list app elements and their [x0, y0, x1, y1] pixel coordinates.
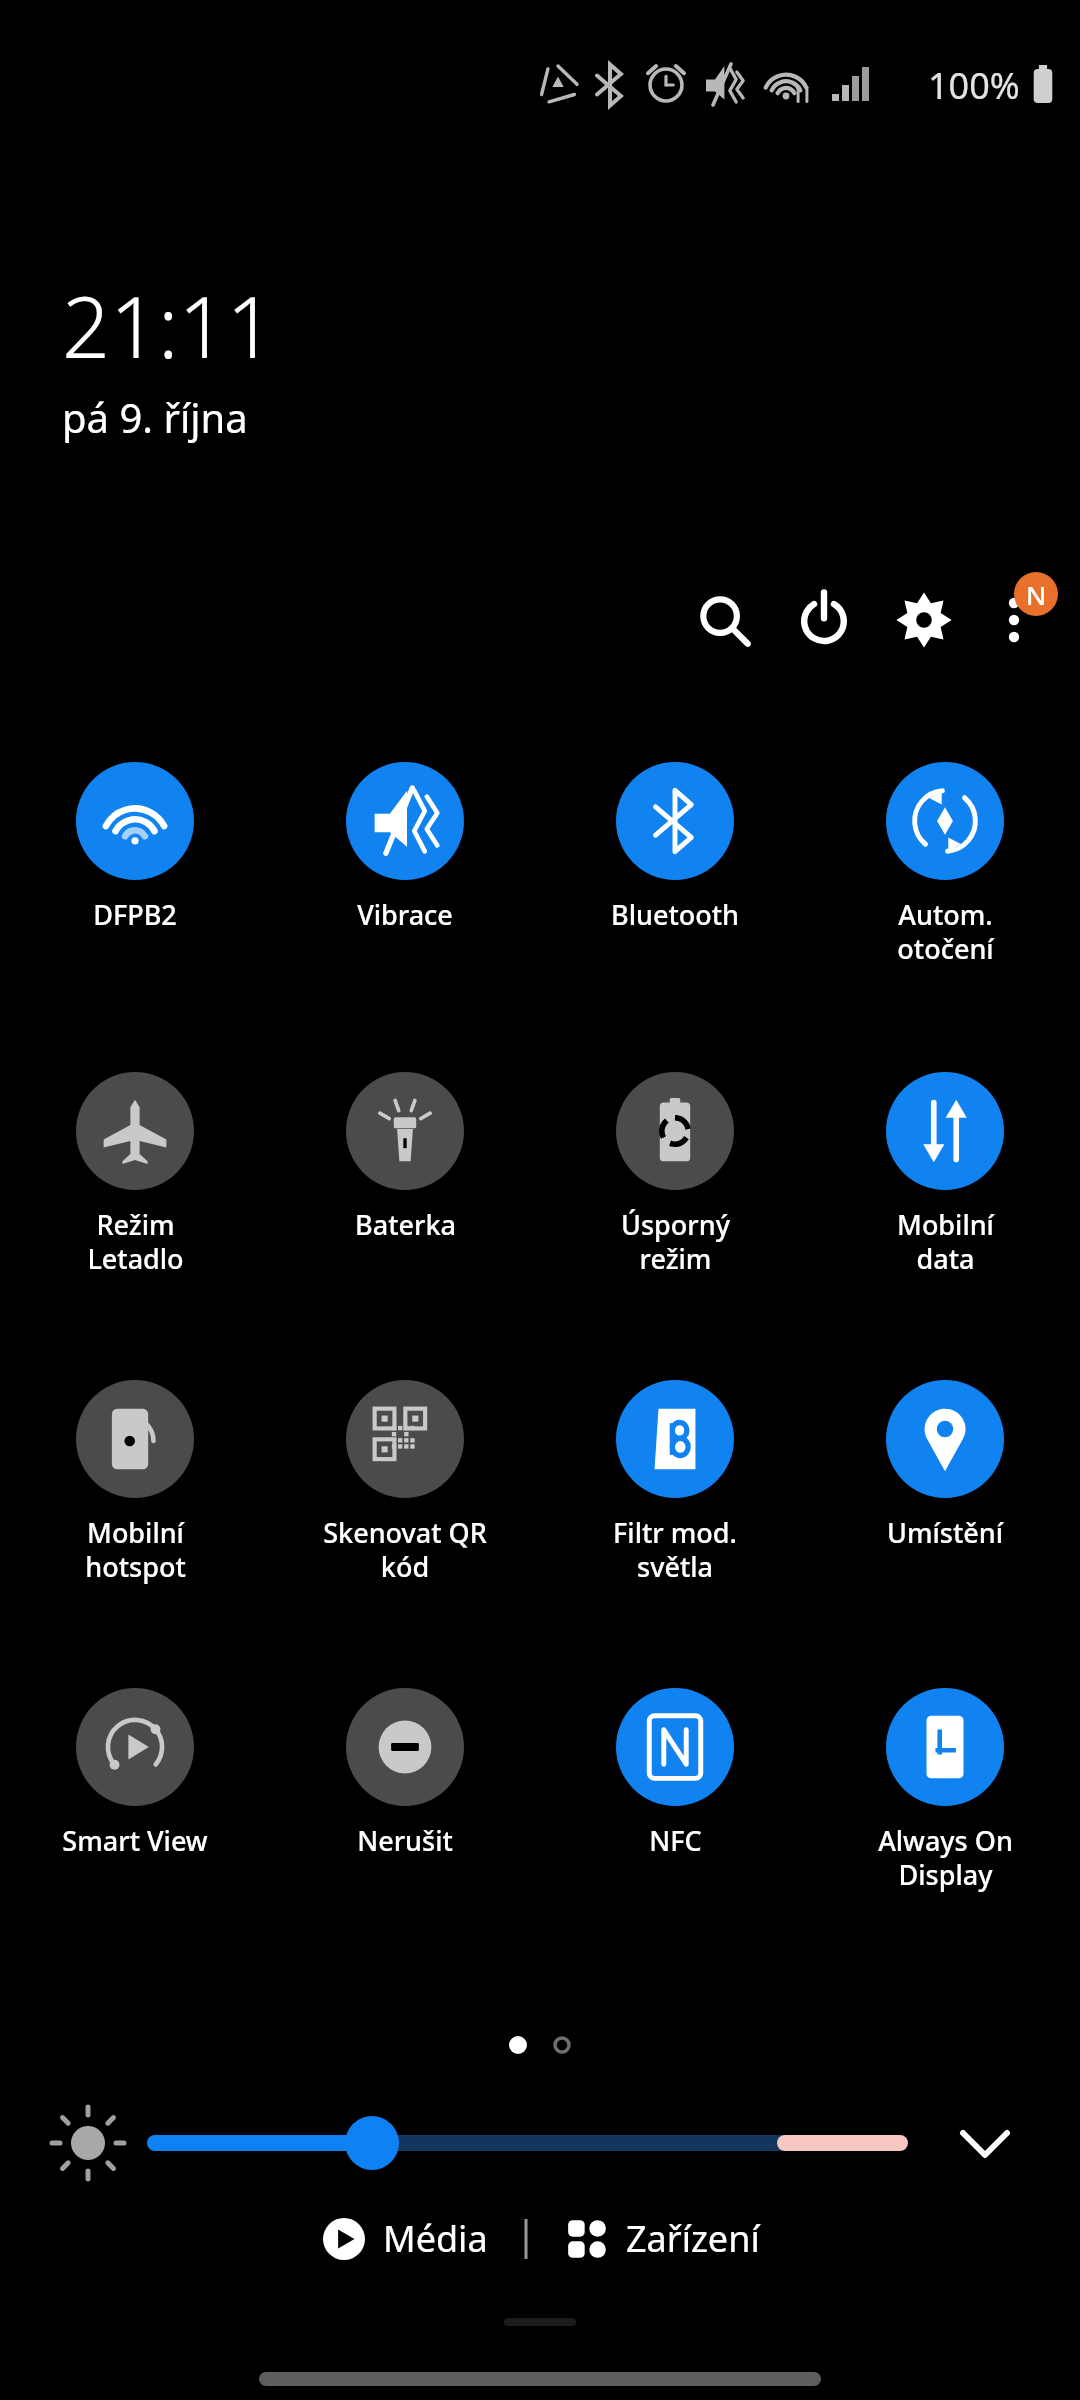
staticText: Baterka: [355, 1206, 456, 1243]
button[interactable]: Settings: [882, 578, 966, 662]
button[interactable]: Autom. otočení: [810, 762, 1080, 967]
staticText: 21:11: [62, 268, 275, 382]
button[interactable]: Skenovat QR kód: [270, 1380, 540, 1585]
button[interactable]: Umístění: [810, 1380, 1080, 1551]
button[interactable]: Filtr mod. světla: [540, 1380, 810, 1585]
staticText: 100%: [928, 61, 1020, 110]
button[interactable]: Média: [315, 2214, 494, 2263]
staticText: Mobilní hotspot: [85, 1514, 186, 1585]
staticText: Média: [383, 2214, 488, 2263]
staticText: Zařízení: [626, 2214, 760, 2263]
button[interactable]: Search: [682, 578, 766, 662]
button[interactable]: Smart View: [0, 1688, 270, 1859]
button[interactable]: Zařízení: [558, 2214, 766, 2263]
button[interactable]: Režim Letadlo: [0, 1072, 270, 1277]
button[interactable]: Úsporný režim: [540, 1072, 810, 1277]
button[interactable]: Always On Display: [810, 1688, 1080, 1893]
button[interactable]: Nerušit: [270, 1688, 540, 1859]
button[interactable]: Vibrace: [270, 762, 540, 933]
button[interactable]: More options: [976, 578, 1060, 662]
staticText: Skenovat QR kód: [323, 1514, 487, 1585]
staticText: Mobilní data: [897, 1206, 994, 1277]
staticText: Vibrace: [357, 896, 453, 933]
button[interactable]: Power: [782, 578, 866, 662]
staticText: Smart View: [62, 1822, 208, 1859]
staticText: N: [1026, 577, 1047, 612]
button[interactable]: Mobilní data: [810, 1072, 1080, 1277]
staticText: Filtr mod. světla: [613, 1514, 737, 1585]
staticText: Režim Letadlo: [87, 1206, 184, 1277]
button[interactable]: Bluetooth: [540, 762, 810, 933]
staticText: pá 9. října: [62, 390, 248, 444]
staticText: NFC: [649, 1822, 702, 1859]
staticText: DFPB2: [93, 896, 177, 933]
button[interactable]: DFPB2: [0, 762, 270, 933]
staticText: Nerušit: [357, 1822, 453, 1859]
button[interactable]: Baterka: [270, 1072, 540, 1243]
staticText: Bluetooth: [611, 896, 739, 933]
staticText: Úsporný režim: [621, 1206, 730, 1277]
staticText: Umístění: [887, 1514, 1003, 1551]
button[interactable]: Brightness: [0, 2108, 1080, 2178]
staticText: Autom. otočení: [897, 896, 994, 967]
button[interactable]: Mobilní hotspot: [0, 1380, 270, 1585]
button[interactable]: NFC: [540, 1688, 810, 1859]
staticText: Always On Display: [878, 1822, 1013, 1893]
